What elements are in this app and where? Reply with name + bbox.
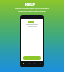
button[interactable]: Home: [22, 62, 25, 65]
button[interactable]: Search: [28, 62, 31, 65]
staticText: HELP: [25, 2, 35, 7]
button[interactable]: Messages: [33, 62, 36, 65]
button[interactable]: Profile: [39, 62, 42, 65]
staticText: Need a hand with your studies? Find the …: [15, 7, 49, 13]
button[interactable]: [23, 56, 41, 60]
